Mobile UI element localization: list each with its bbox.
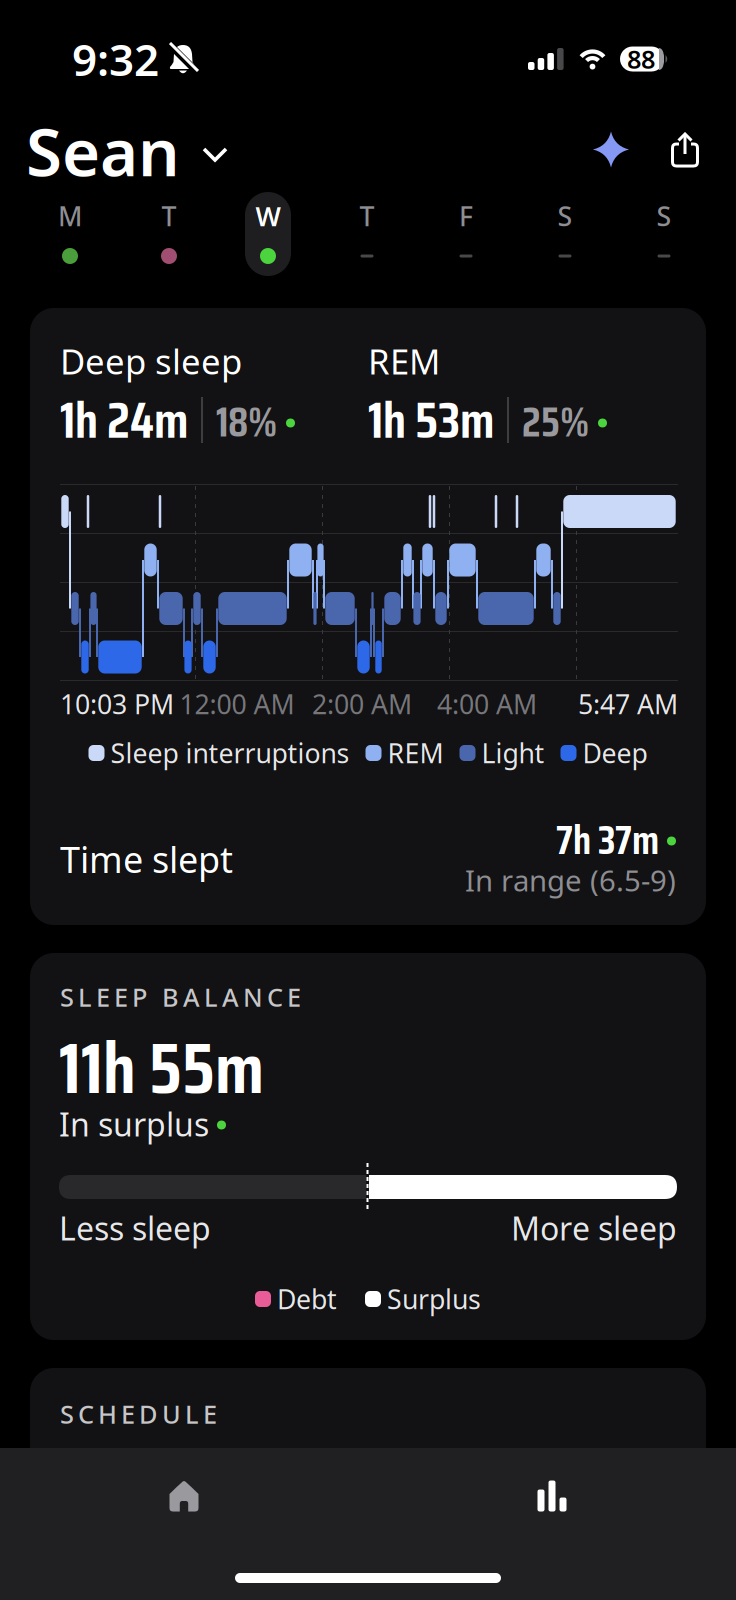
button[interactable]: AI insights — [593, 131, 629, 166]
button[interactable]: S — [542, 192, 588, 276]
staticText: REM — [387, 735, 443, 771]
staticText: 4:00 AM — [437, 686, 537, 722]
staticText: 1h 24m — [60, 380, 188, 460]
staticText: REM — [368, 338, 440, 384]
staticText: In surplus — [59, 1103, 209, 1145]
staticText: Debt — [277, 1281, 337, 1317]
staticText: S L E E P B A L A N C E — [60, 980, 301, 1014]
button[interactable]: Share — [671, 133, 699, 167]
staticText: Less sleep — [59, 1207, 211, 1249]
staticText: Deep sleep — [60, 338, 242, 384]
staticText: Sleep interruptions — [110, 735, 349, 771]
staticText: W — [255, 198, 280, 234]
staticText: Time slept — [60, 835, 233, 883]
staticText: 88 — [627, 42, 655, 76]
staticText: M — [58, 198, 82, 234]
staticText: More sleep — [511, 1207, 677, 1249]
staticText: Sean — [26, 108, 180, 194]
staticText: 12:00 AM — [179, 686, 294, 722]
staticText: S C H E D U L E — [60, 1397, 217, 1431]
staticText: Surplus — [387, 1281, 481, 1317]
staticText: Deep — [582, 735, 647, 771]
staticText: 2:00 AM — [312, 686, 412, 722]
staticText: 10:03 PM — [60, 686, 174, 722]
button[interactable]: W — [245, 192, 291, 276]
button[interactable]: M — [47, 192, 93, 276]
staticText: 9:32 — [72, 30, 159, 88]
button[interactable]: F — [443, 192, 489, 276]
button[interactable]: S — [641, 192, 687, 276]
staticText: 18% — [216, 389, 277, 455]
staticText: S — [557, 198, 572, 234]
staticText: 5:47 AM — [578, 686, 678, 722]
staticText: S — [656, 198, 671, 234]
button[interactable]: Sean — [26, 108, 228, 194]
staticText: F — [459, 198, 473, 234]
staticText: In range (6.5-9) — [465, 860, 676, 899]
staticText: 25% — [522, 389, 589, 455]
button[interactable]: T — [146, 192, 192, 276]
staticText: T — [359, 198, 374, 234]
staticText: 7h 37m — [556, 808, 659, 871]
staticText: 11h 55m — [59, 1011, 264, 1125]
button[interactable]: Home — [139, 1461, 229, 1531]
staticText: Light — [481, 735, 544, 771]
staticText: 1h 53m — [368, 380, 494, 460]
button[interactable]: T — [344, 192, 390, 276]
staticText: T — [161, 198, 176, 234]
button[interactable]: Sleep stats — [507, 1461, 597, 1531]
